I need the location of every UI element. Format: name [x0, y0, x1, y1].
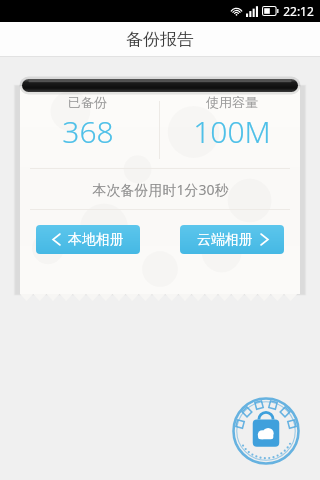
staticText: 使用容量: [206, 94, 258, 110]
staticText: 云端相册: [197, 231, 253, 249]
staticText: 备份报告: [126, 29, 194, 50]
staticText: 22:12: [283, 3, 314, 19]
staticText: 已备份: [68, 94, 107, 110]
staticText: 100M: [193, 111, 271, 152]
staticText: 本地相册: [68, 231, 124, 249]
staticText: 本次备份用时1分30秒: [92, 180, 229, 199]
staticText: 368: [62, 111, 114, 152]
button[interactable]: 本地相册: [36, 225, 140, 254]
button[interactable]: 云端相册: [180, 225, 284, 254]
